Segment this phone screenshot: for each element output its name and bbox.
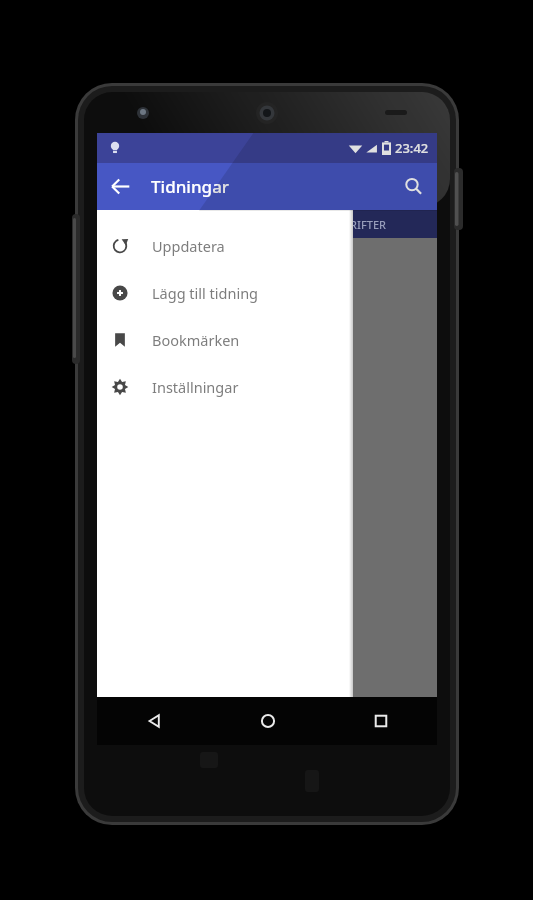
staticText: Bookmärken (152, 330, 240, 350)
staticText: Uppdatera (152, 236, 225, 256)
button[interactable]: Back (97, 697, 211, 745)
staticText: Lägg till tidning (152, 283, 259, 303)
staticText: TIDSKRIFTER (319, 217, 387, 232)
button[interactable]: Recent apps (324, 697, 437, 745)
staticText: Inställningar (152, 377, 239, 397)
button[interactable]: Back (97, 163, 144, 210)
button[interactable]: Home (211, 697, 324, 745)
button[interactable]: Lägg till tidning (97, 269, 353, 316)
button[interactable]: Bookmärken (97, 316, 353, 363)
staticText: Tidningar (151, 175, 230, 198)
button[interactable]: Inställningar (97, 363, 353, 410)
button[interactable]: Uppdatera (97, 222, 353, 269)
staticText: 23:42 (395, 139, 429, 157)
button[interactable]: Search (390, 163, 437, 210)
